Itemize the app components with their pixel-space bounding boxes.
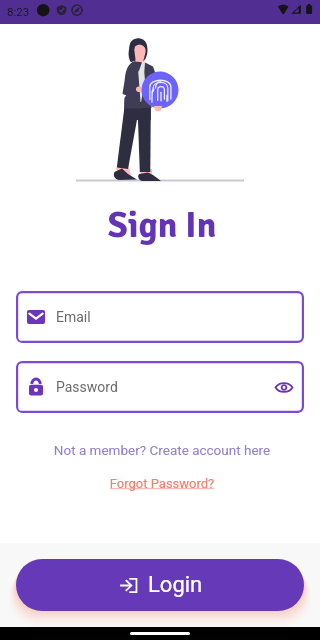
staticText: Sign In: [2, 203, 320, 247]
button[interactable]: Password: [16, 361, 304, 413]
staticText: Not a member? Create account here: [2, 442, 320, 458]
button[interactable]: Show password: [264, 361, 304, 413]
staticText: Email: [56, 309, 91, 325]
staticText: 8:23: [7, 5, 30, 18]
staticText: Forgot Password?: [2, 476, 320, 491]
button[interactable]: Email: [16, 291, 304, 343]
staticText: Password: [56, 379, 118, 395]
staticText: Login: [148, 572, 203, 598]
button[interactable]: Forgot Password?: [2, 476, 320, 491]
button[interactable]: Not a member? Create account here: [2, 442, 320, 458]
button[interactable]: Login: [16, 559, 304, 611]
